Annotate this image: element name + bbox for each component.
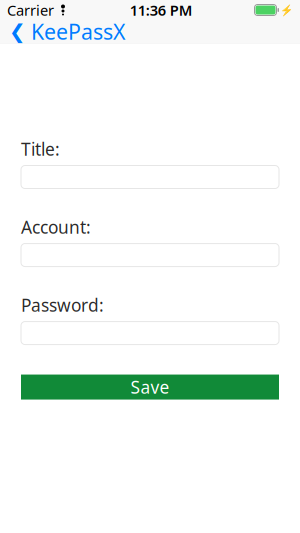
staticText: Title: — [21, 137, 60, 160]
staticText: KeePassX — [31, 17, 126, 46]
staticText: 11:36 PM — [130, 0, 193, 20]
staticText: ❮ — [9, 20, 26, 43]
staticText: ⚡ — [280, 4, 293, 16]
button[interactable]: Save — [21, 375, 279, 400]
staticText: Account: — [21, 215, 91, 238]
staticText: Save — [130, 375, 169, 398]
button[interactable]: ❮ — [0, 14, 126, 49]
staticText: Password: — [21, 293, 104, 316]
staticText: Carrier — [7, 0, 54, 20]
